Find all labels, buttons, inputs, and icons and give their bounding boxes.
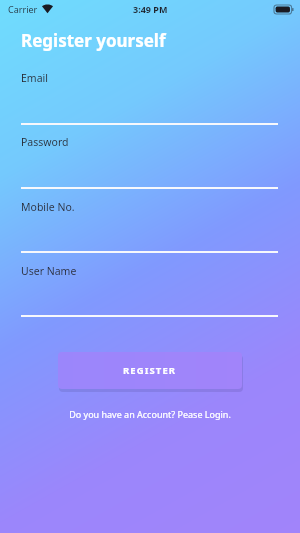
- staticText: 3:49 PM: [133, 3, 168, 15]
- button[interactable]: Do you have an Account? Pease Login.: [0, 406, 300, 422]
- staticText: Do you have an Account? Pease Login.: [69, 408, 231, 420]
- staticText: REGISTER: [123, 364, 177, 377]
- button[interactable]: REGISTER: [58, 352, 242, 389]
- button[interactable]: User Name: [21, 264, 278, 318]
- button[interactable]: Email: [21, 71, 278, 126]
- button[interactable]: Mobile No.: [21, 200, 278, 254]
- button[interactable]: Password: [21, 135, 278, 190]
- staticText: Email: [21, 71, 48, 85]
- staticText: Mobile No.: [21, 200, 75, 214]
- staticText: Password: [21, 135, 69, 149]
- staticText: Carrier: [8, 3, 38, 15]
- staticText: Register yourself: [21, 29, 166, 52]
- staticText: User Name: [21, 264, 77, 278]
